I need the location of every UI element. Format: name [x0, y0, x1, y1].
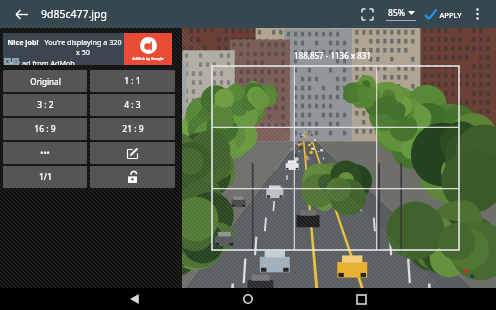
staticText: •••	[40, 147, 50, 159]
button[interactable]: More options	[468, 5, 486, 23]
staticText: 188,857 - 1136 x 831	[294, 50, 371, 61]
button[interactable]: •••	[3, 142, 87, 164]
button[interactable]: APPLY	[424, 8, 462, 21]
button[interactable]: Original	[3, 70, 87, 92]
staticText: 9d85c477.jpg	[41, 7, 107, 21]
button[interactable]: 1 : 1	[90, 70, 175, 92]
button[interactable]: Back	[10, 3, 32, 25]
button[interactable]: Back	[124, 288, 146, 310]
button[interactable]: Edit	[90, 142, 175, 164]
button[interactable]: Lock aspect ratio	[90, 166, 175, 188]
staticText: AdMob by Google	[132, 56, 164, 61]
staticText: You're displaying a 320 x 50	[42, 37, 124, 57]
staticText: Original	[30, 76, 61, 87]
staticText: 1/1	[39, 171, 52, 183]
button[interactable]: 3 : 2	[3, 94, 87, 116]
staticText: test ad from AdMob.	[7, 58, 77, 65]
button[interactable]: 85%	[386, 7, 416, 21]
staticText: 16 : 9	[34, 123, 56, 135]
staticText: 1 : 1	[124, 75, 141, 87]
staticText: 4 : 3	[124, 99, 141, 111]
button[interactable]: 21 : 9	[90, 118, 175, 140]
staticText: APPLY	[439, 10, 462, 20]
button[interactable]: Ad info	[12, 58, 19, 65]
staticText: x	[6, 58, 9, 65]
button[interactable]: Close ad	[4, 58, 11, 65]
staticText: Nice job!	[7, 37, 39, 47]
button[interactable]: Recent apps	[350, 288, 372, 310]
button[interactable]: Fit to screen	[356, 3, 378, 25]
staticText: i	[15, 58, 17, 65]
button[interactable]: 4 : 3	[90, 94, 175, 116]
button[interactable]: 16 : 9	[3, 118, 87, 140]
staticText: 21 : 9	[122, 123, 144, 135]
button[interactable]: Home	[237, 288, 259, 310]
staticText: 3 : 2	[37, 99, 54, 111]
staticText: 85%	[388, 7, 405, 19]
button[interactable]: Nice job!	[3, 33, 172, 65]
button[interactable]: 1/1	[3, 166, 87, 188]
